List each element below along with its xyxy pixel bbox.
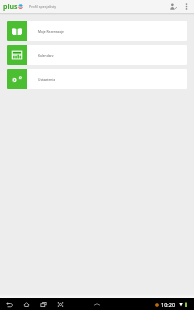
button[interactable]: Recent apps [37, 298, 50, 310]
staticText: Moje Rezerwacje [38, 29, 64, 33]
staticText: plus [3, 2, 18, 12]
staticText: 10:20 [161, 301, 176, 308]
staticText: Profil specjalisty [29, 4, 57, 9]
button[interactable]: Status [155, 301, 194, 308]
button[interactable]: Moje Rezerwacje [7, 21, 187, 41]
button[interactable]: Account [166, 0, 180, 13]
button[interactable]: Kalendarz [7, 45, 187, 65]
button[interactable]: Back [3, 298, 16, 310]
button[interactable]: Screenshot [54, 298, 67, 310]
button[interactable]: Ustawienia [7, 69, 187, 89]
button[interactable]: More options [180, 0, 192, 13]
button[interactable]: Show notifications [90, 298, 104, 310]
staticText: Ustawienia [38, 77, 56, 81]
staticText: Kalendarz [38, 53, 54, 57]
button[interactable]: Home [20, 298, 33, 310]
